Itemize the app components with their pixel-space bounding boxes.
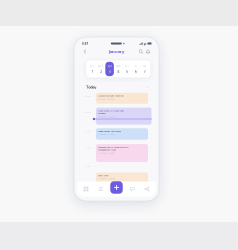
staticText: Sat bbox=[143, 65, 146, 68]
button[interactable]: Coffee breaks and snacks bbox=[96, 128, 148, 140]
button[interactable]: Back bbox=[81, 48, 88, 55]
button[interactable]: Make plans to create new bbox=[96, 108, 151, 125]
staticText: 1 bbox=[91, 68, 93, 74]
button[interactable]: Have lunch bbox=[96, 172, 148, 183]
staticText: 12:00 bbox=[85, 164, 90, 168]
staticText: Wed bbox=[116, 65, 121, 68]
staticText: 10:30 AM - 11:00 AM bbox=[98, 133, 115, 136]
button[interactable]: Fri bbox=[131, 62, 140, 76]
staticText: Tue bbox=[108, 65, 112, 68]
staticText: 09:30 AM - 10:30 AM bbox=[98, 115, 115, 118]
button[interactable]: Agenda bbox=[96, 182, 106, 195]
staticText: products bbox=[98, 112, 106, 115]
staticText: management team bbox=[98, 148, 116, 151]
button[interactable]: Tue bbox=[105, 62, 114, 76]
staticText: Make plans to create new bbox=[98, 109, 124, 112]
staticText: Fri bbox=[134, 65, 137, 68]
staticText: 2 bbox=[100, 68, 102, 74]
staticText: Company policy meeting with bbox=[98, 146, 128, 148]
staticText: Today bbox=[86, 84, 96, 90]
button[interactable]: Sat bbox=[140, 62, 149, 76]
staticText: 09:00 bbox=[85, 110, 90, 114]
staticText: Thu bbox=[124, 65, 129, 68]
staticText: 7 bbox=[143, 68, 145, 74]
staticText: 08:00 bbox=[85, 94, 90, 98]
button[interactable]: Dashboard bbox=[81, 182, 91, 195]
staticText: Marketing team meeting bbox=[98, 94, 123, 97]
staticText: January bbox=[109, 49, 124, 54]
button[interactable]: Add event bbox=[110, 181, 123, 194]
staticText: Mon bbox=[98, 65, 104, 68]
button[interactable]: Company policy meeting with bbox=[96, 144, 148, 162]
staticText: Coffee breaks and snacks bbox=[98, 130, 121, 133]
button[interactable]: Thu bbox=[123, 62, 131, 76]
button[interactable]: Notifications bbox=[144, 48, 151, 55]
staticText: 3 bbox=[109, 68, 111, 74]
button[interactable]: Wed bbox=[114, 62, 123, 76]
staticText: 5 bbox=[126, 68, 128, 74]
staticText: 08:30 AM - 09:30 AM bbox=[98, 98, 115, 100]
staticText: 4 bbox=[117, 68, 119, 74]
staticText: 11:00 bbox=[85, 146, 90, 150]
button[interactable]: Share bbox=[142, 182, 152, 195]
staticText: 11:30 AM - 12:30 PM bbox=[98, 152, 115, 154]
staticText: 9:41 bbox=[81, 41, 88, 46]
staticText: 12:30 PM - 13:30 PM bbox=[98, 177, 115, 180]
staticText: 10:00 bbox=[85, 129, 90, 133]
button[interactable]: Search bbox=[137, 48, 144, 55]
button[interactable]: Mon bbox=[97, 62, 105, 76]
button[interactable]: Messages bbox=[127, 182, 137, 195]
button[interactable]: Marketing team meeting bbox=[96, 93, 148, 104]
button[interactable]: Sun bbox=[88, 62, 96, 76]
staticText: Sun bbox=[90, 65, 95, 68]
staticText: Have lunch bbox=[98, 174, 108, 177]
staticText: 6 bbox=[135, 68, 137, 74]
